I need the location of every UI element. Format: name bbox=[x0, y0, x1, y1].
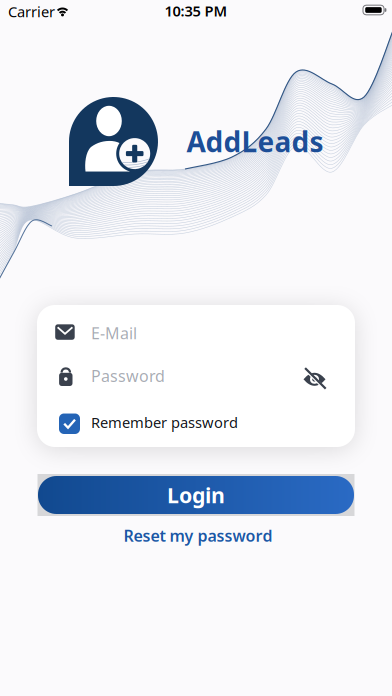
staticText: AddLeads bbox=[186, 123, 323, 160]
button[interactable]: Reset my password bbox=[123, 525, 272, 546]
button[interactable]: Login bbox=[38, 476, 354, 514]
staticText: Password bbox=[91, 365, 165, 386]
staticText: Login bbox=[167, 481, 225, 509]
staticText: Reset my password bbox=[123, 525, 272, 546]
staticText: Carrier bbox=[8, 2, 55, 21]
staticText: 10:35 PM bbox=[164, 1, 227, 20]
button[interactable]: Remember password bbox=[59, 413, 238, 434]
staticText: Remember password bbox=[91, 412, 238, 432]
staticText: E-Mail bbox=[91, 322, 137, 343]
button[interactable]: Show password bbox=[299, 364, 329, 394]
